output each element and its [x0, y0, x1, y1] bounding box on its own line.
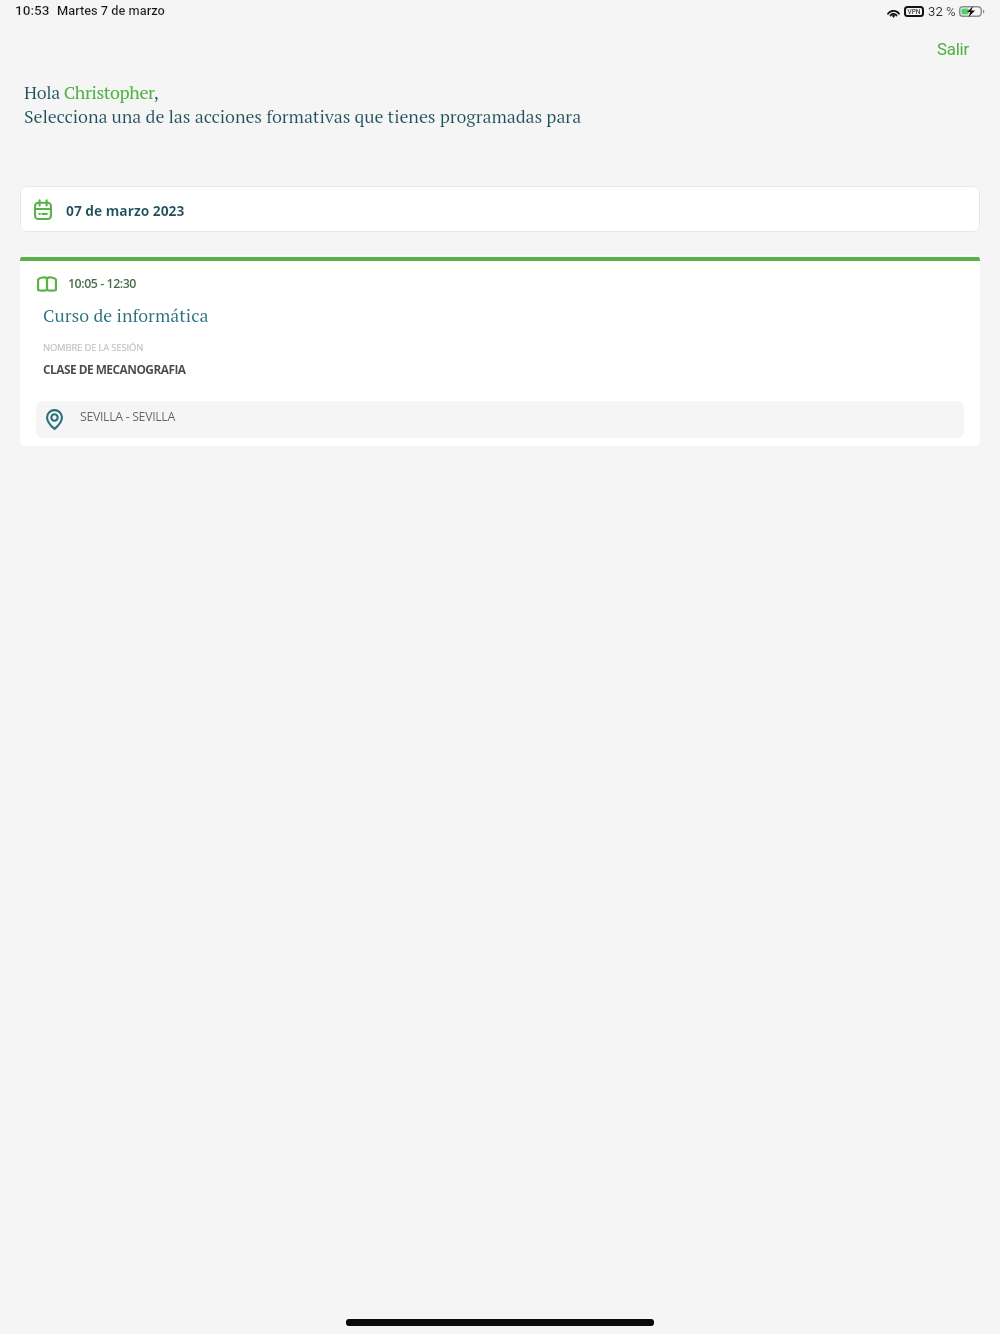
button[interactable]: 10:05 - 12:30 [20, 255, 980, 446]
staticText: 07 de marzo 2023 [66, 201, 185, 220]
other: VPN [904, 6, 924, 17]
staticText: CLASE DE MECANOGRAFIA [43, 361, 186, 377]
staticText: 10:05 - 12:30 [68, 275, 136, 292]
staticText: Martes 7 de marzo [57, 3, 165, 18]
staticText: SEVILLA - SEVILLA [80, 408, 175, 425]
other: Wi-Fi [886, 6, 901, 18]
button[interactable]: Salir [923, 32, 983, 66]
staticText: 32 % [928, 4, 956, 19]
staticText: Curso de informática [43, 304, 209, 328]
staticText: Salir [937, 39, 969, 59]
staticText: 10:53 [15, 2, 50, 18]
other: Battery [959, 6, 984, 17]
staticText: VPN [904, 8, 924, 16]
staticText: NOMBRE DE LA SESIÓN [43, 341, 144, 354]
staticText: Hola Christopher, [24, 80, 159, 104]
button[interactable]: 07 de marzo 2023 [20, 186, 980, 232]
staticText: Selecciona una de las acciones formativa… [24, 104, 582, 128]
